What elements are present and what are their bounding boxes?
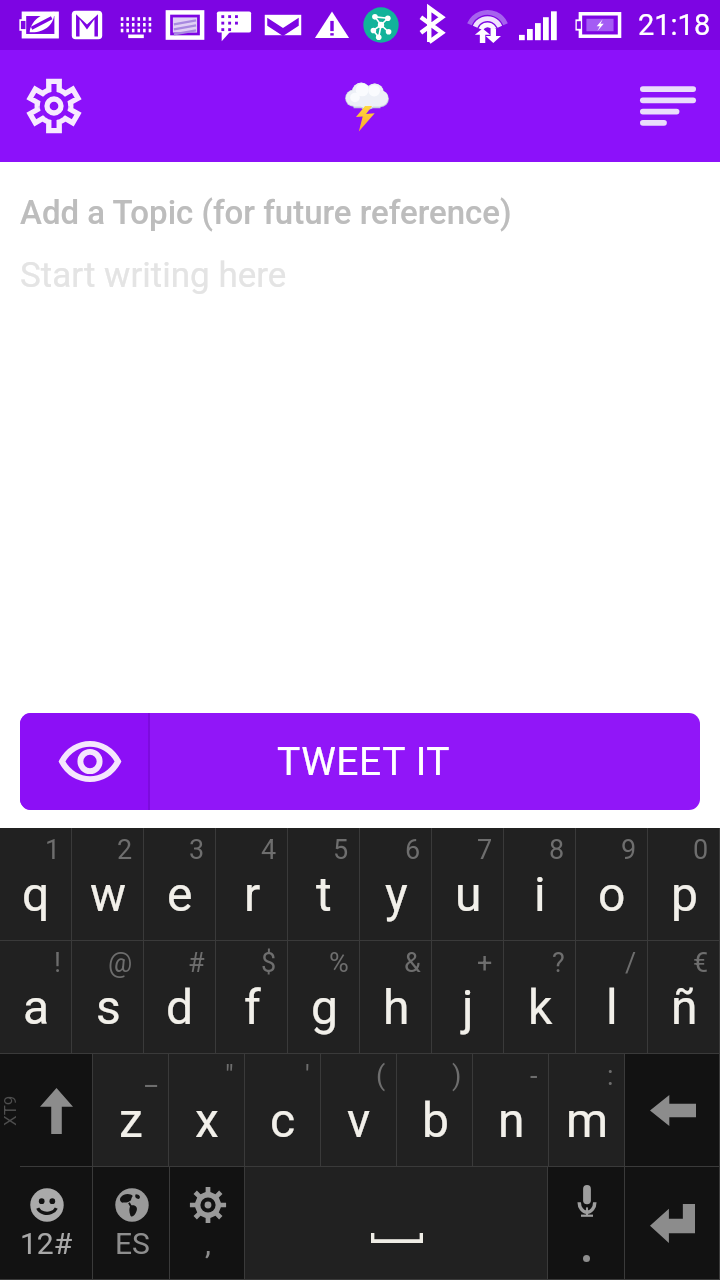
staticText: ': [305, 1060, 310, 1092]
staticText: x: [195, 1092, 219, 1148]
staticText: b: [422, 1092, 449, 1148]
staticText: h: [383, 979, 410, 1035]
button[interactable]: Add a Topic (for future reference): [20, 193, 720, 232]
button[interactable]: Backspace: [625, 1054, 720, 1167]
staticText: 12#: [20, 1226, 73, 1261]
button[interactable]: Preview: [20, 713, 148, 810]
staticText: XT9: [0, 1095, 20, 1126]
button[interactable]: 5: [288, 828, 360, 941]
staticText: t: [316, 866, 332, 922]
button[interactable]: €: [648, 941, 720, 1054]
button[interactable]: ): [397, 1054, 473, 1167]
button[interactable]: (: [321, 1054, 397, 1167]
button[interactable]: 7: [432, 828, 504, 941]
staticText: u: [455, 866, 482, 922]
staticText: @: [108, 947, 133, 979]
button[interactable]: +: [432, 941, 504, 1054]
button[interactable]: !: [0, 941, 72, 1054]
staticText: f: [244, 979, 261, 1035]
staticText: 1: [45, 834, 61, 866]
staticText: z: [119, 1092, 143, 1148]
staticText: k: [528, 979, 553, 1035]
staticText: -: [530, 1060, 538, 1092]
staticText: m: [566, 1092, 609, 1148]
button[interactable]: @: [72, 941, 144, 1054]
button[interactable]: 2: [72, 828, 144, 941]
button[interactable]: Settings: [10, 62, 98, 150]
staticText: c: [270, 1092, 296, 1148]
staticText: n: [498, 1092, 525, 1148]
staticText: 2: [117, 834, 133, 866]
button[interactable]: ": [169, 1054, 245, 1167]
button[interactable]: Enter: [625, 1167, 720, 1280]
staticText: 8: [549, 834, 565, 866]
button[interactable]: Space: [245, 1167, 548, 1280]
button[interactable]: Settings: [170, 1167, 245, 1280]
button[interactable]: Sort: [624, 62, 712, 150]
staticText: €: [693, 947, 709, 979]
staticText: ": [225, 1060, 234, 1092]
staticText: +: [477, 947, 493, 979]
staticText: $: [261, 947, 277, 979]
button[interactable]: Shift: [20, 1054, 93, 1167]
staticText: j: [462, 979, 474, 1035]
button[interactable]: 8: [504, 828, 576, 941]
staticText: s: [96, 979, 121, 1035]
staticText: 4: [261, 834, 277, 866]
button[interactable]: $: [216, 941, 288, 1054]
staticText: (: [376, 1060, 386, 1092]
staticText: a: [23, 979, 50, 1035]
staticText: &: [404, 947, 421, 979]
staticText: 6: [405, 834, 421, 866]
staticText: ,: [205, 1226, 211, 1261]
button[interactable]: Language: [93, 1167, 170, 1280]
button[interactable]: Weather: [328, 74, 392, 138]
staticText: 7: [477, 834, 493, 866]
staticText: 5: [333, 834, 349, 866]
button[interactable]: 4: [216, 828, 288, 941]
button[interactable]: /: [576, 941, 648, 1054]
staticText: ñ: [671, 979, 698, 1035]
button[interactable]: Voice input: [548, 1167, 625, 1280]
button[interactable]: %: [288, 941, 360, 1054]
button[interactable]: 1: [0, 828, 72, 941]
button[interactable]: -: [473, 1054, 549, 1167]
button[interactable]: 0: [648, 828, 720, 941]
staticText: q: [22, 866, 50, 922]
staticText: y: [385, 866, 408, 922]
button[interactable]: Preview: [20, 713, 700, 810]
staticText: d: [166, 979, 194, 1035]
button[interactable]: 9: [576, 828, 648, 941]
button[interactable]: _: [93, 1054, 169, 1167]
staticText: v: [347, 1092, 371, 1148]
button[interactable]: ': [245, 1054, 321, 1167]
staticText: :: [607, 1060, 614, 1092]
button[interactable]: :: [549, 1054, 625, 1167]
button[interactable]: 6: [360, 828, 432, 941]
button[interactable]: &: [360, 941, 432, 1054]
staticText: ?: [552, 947, 565, 979]
staticText: e: [167, 866, 193, 922]
button[interactable]: 3: [144, 828, 216, 941]
staticText: ): [452, 1060, 462, 1092]
staticText: _: [145, 1060, 158, 1092]
staticText: 3: [189, 834, 205, 866]
button[interactable]: #: [144, 941, 216, 1054]
staticText: %: [329, 947, 349, 979]
button[interactable]: Start writing here: [20, 255, 720, 296]
staticText: /: [625, 947, 637, 979]
staticText: p: [671, 866, 698, 922]
staticText: #: [188, 947, 205, 979]
staticText: r: [244, 866, 261, 922]
staticText: o: [598, 866, 626, 922]
staticText: !: [54, 947, 61, 979]
staticText: i: [534, 866, 546, 922]
staticText: ES: [115, 1226, 150, 1261]
staticText: 9: [621, 834, 637, 866]
staticText: l: [606, 979, 618, 1035]
button[interactable]: Symbols: [0, 1167, 93, 1280]
staticText: g: [311, 979, 338, 1035]
button[interactable]: ?: [504, 941, 576, 1054]
staticText: 21:18: [638, 8, 711, 42]
staticText: w: [90, 866, 127, 922]
